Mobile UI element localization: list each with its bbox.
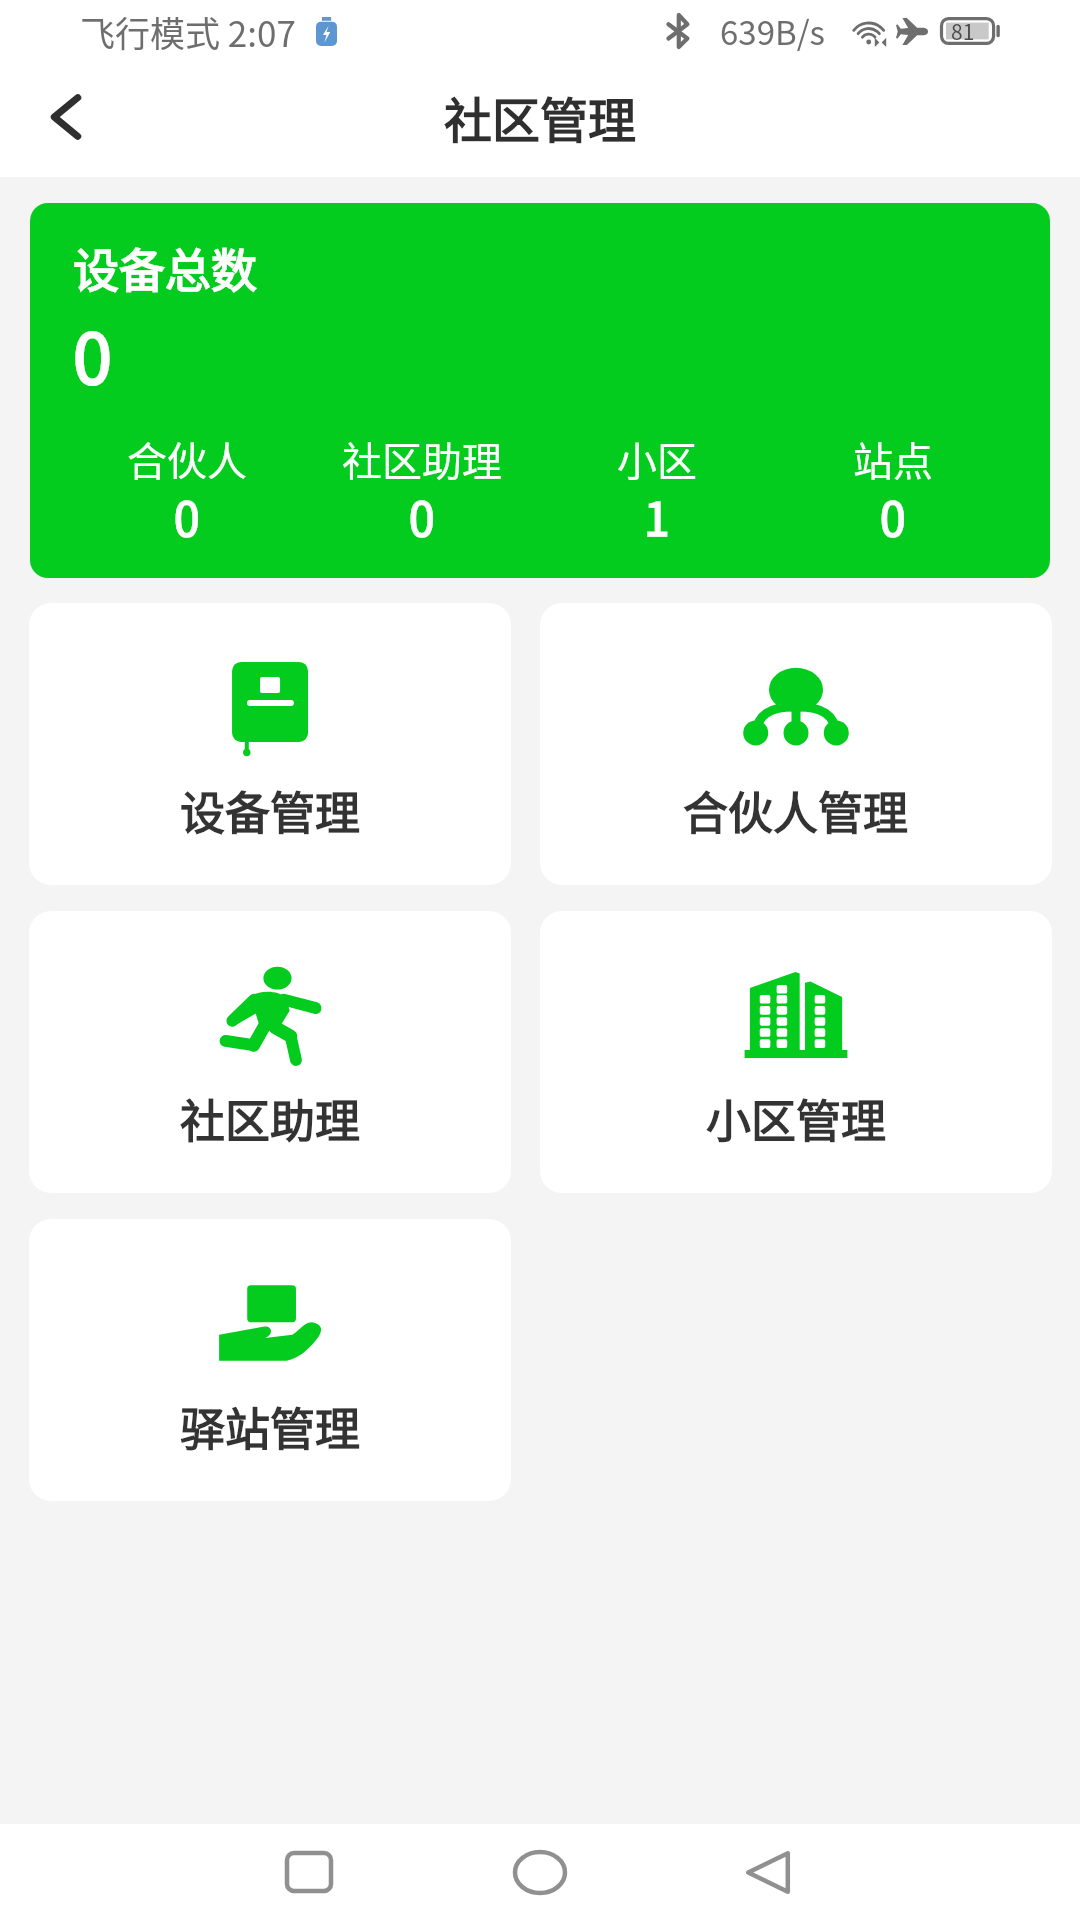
button[interactable]: Recents (232, 1824, 386, 1920)
staticText: 飞行模式 2:07 (80, 6, 296, 57)
staticText: 合伙人管理 (683, 778, 909, 843)
button[interactable]: Back (7, 62, 125, 177)
staticText: 合伙人 (127, 430, 247, 488)
staticText: 0 (880, 483, 906, 550)
staticText: 1 (644, 483, 670, 550)
staticText: 小区 (617, 430, 697, 488)
staticText: 社区助理 (342, 430, 502, 488)
button[interactable]: 合伙人管理 (540, 603, 1052, 885)
staticText: 设备总数 (73, 234, 257, 301)
staticText: 81 (951, 16, 975, 44)
button[interactable]: 小区管理 (540, 911, 1052, 1193)
staticText: 0 (73, 303, 112, 404)
staticText: 设备管理 (180, 778, 361, 843)
button[interactable]: Back (691, 1824, 845, 1920)
button[interactable]: Home (463, 1824, 617, 1920)
staticText: 小区管理 (706, 1086, 887, 1151)
button[interactable]: 设备管理 (29, 603, 511, 885)
staticText: 0 (409, 483, 435, 550)
staticText: 639B/s (720, 7, 826, 55)
button[interactable]: 设备总数 (30, 203, 1050, 578)
button[interactable]: 驿站管理 (29, 1219, 511, 1501)
staticText: 社区助理 (180, 1086, 361, 1151)
staticText: 0 (174, 483, 200, 550)
staticText: 社区管理 (444, 82, 637, 152)
staticText: 站点 (853, 430, 933, 488)
staticText: 驿站管理 (180, 1394, 361, 1459)
button[interactable]: 社区助理 (29, 911, 511, 1193)
